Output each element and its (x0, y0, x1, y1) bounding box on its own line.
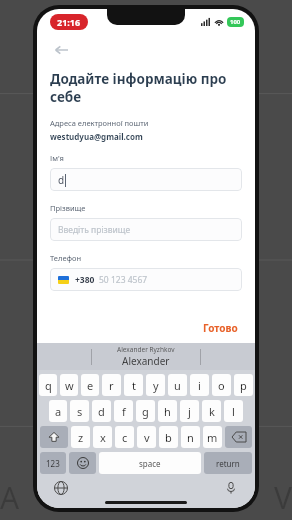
button[interactable]: s (70, 400, 89, 422)
staticText: e (87, 378, 94, 393)
staticText: z (78, 430, 84, 445)
button[interactable]: Change keyboard (53, 480, 69, 496)
button[interactable]: 123 (40, 452, 66, 474)
button[interactable]: return (204, 452, 252, 474)
button[interactable]: h (158, 400, 177, 422)
button[interactable]: g (136, 400, 155, 422)
button[interactable]: Shift (40, 426, 68, 448)
button[interactable]: v (137, 426, 156, 448)
staticText: o (218, 378, 225, 393)
staticText: q (45, 378, 52, 393)
staticText: Ім'я (50, 153, 64, 163)
button[interactable]: Delete (225, 426, 252, 448)
staticText: 100 (230, 18, 241, 26)
staticText: i (198, 378, 201, 393)
staticText: Готово (203, 321, 238, 335)
button[interactable]: u (168, 374, 187, 396)
staticText: f (122, 404, 126, 419)
button[interactable]: space (99, 452, 201, 474)
button[interactable]: Введіть прізвище (50, 218, 242, 241)
button[interactable]: l (224, 400, 243, 422)
button[interactable]: c (115, 426, 134, 448)
button[interactable]: d (50, 168, 242, 191)
staticText: Додайте інформацію про себе (50, 70, 242, 106)
staticText: 123 (46, 458, 60, 469)
staticText: Alexander Ryzhkov (117, 345, 175, 354)
button[interactable]: Alexander Ryzhkov (92, 345, 200, 368)
button[interactable]: y (146, 374, 165, 396)
button[interactable]: a (49, 400, 67, 422)
button[interactable]: b (159, 426, 178, 448)
button[interactable]: e (81, 374, 99, 396)
staticText: b (165, 430, 172, 445)
staticText: p (240, 378, 247, 393)
staticText: return (216, 458, 240, 469)
button[interactable]: n (181, 426, 200, 448)
staticText: +380 (75, 274, 95, 286)
button[interactable]: z (71, 426, 90, 448)
staticText: 21:16 (57, 16, 81, 28)
button[interactable]: k (202, 400, 221, 422)
staticText: u (174, 378, 181, 393)
button[interactable]: Dictate (223, 480, 239, 496)
staticText: k (209, 404, 215, 419)
staticText: a (55, 404, 62, 419)
button[interactable]: q (39, 374, 57, 396)
staticText: j (188, 404, 191, 419)
button[interactable]: Back (50, 39, 72, 61)
button[interactable]: m (203, 426, 222, 448)
button[interactable]: f (114, 400, 133, 422)
button[interactable]: d (92, 400, 111, 422)
staticText: t (132, 378, 136, 393)
button[interactable]: t (124, 374, 143, 396)
staticText: n (187, 430, 194, 445)
staticText: V (274, 477, 292, 518)
staticText: A (0, 477, 20, 518)
button[interactable]: Готово (199, 317, 242, 339)
staticText: g (142, 404, 149, 419)
other: Shift (48, 431, 60, 443)
staticText: v (144, 430, 150, 445)
staticText: 50 123 4567 (99, 274, 148, 286)
staticText: Введіть прізвище (58, 224, 131, 236)
button[interactable]: w (60, 374, 78, 396)
staticText: Телефон (50, 253, 82, 263)
other: Emoji (77, 457, 89, 469)
staticText: h (164, 404, 171, 419)
staticText: s (77, 404, 83, 419)
staticText: r (109, 378, 114, 393)
staticText: w (65, 378, 74, 393)
button[interactable]: i (190, 374, 209, 396)
staticText: d (58, 173, 65, 187)
other: Delete (232, 432, 246, 442)
staticText: Прізвище (50, 203, 86, 213)
staticText: y (153, 378, 159, 393)
button[interactable]: p (234, 374, 253, 396)
button[interactable]: r (102, 374, 121, 396)
staticText: space (139, 458, 161, 469)
staticText: westudyua@gmail.com (50, 131, 143, 142)
staticText: Адреса електронної пошти (50, 118, 149, 128)
button[interactable]: j (180, 400, 199, 422)
button[interactable]: +380 (50, 268, 242, 291)
staticText: d (98, 404, 105, 419)
staticText: Alexander (122, 354, 170, 368)
staticText: m (207, 430, 218, 445)
button[interactable]: Emoji (69, 452, 96, 474)
staticText: l (232, 404, 235, 419)
button[interactable]: x (93, 426, 112, 448)
staticText: x (100, 430, 106, 445)
staticText: c (122, 430, 128, 445)
button[interactable]: o (212, 374, 231, 396)
